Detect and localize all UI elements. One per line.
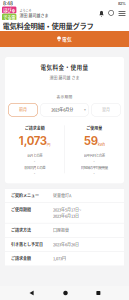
staticText: ほぴゅ — [3, 7, 15, 13]
staticText: ようこそ — [19, 8, 31, 13]
button[interactable]: 前月 — [8, 103, 37, 116]
staticText: - — [93, 159, 95, 163]
staticText: 電気料金明細・使用量グラフ — [2, 20, 93, 31]
staticText: 澤田 藤司雄さま — [19, 13, 48, 19]
staticText: kWh — [98, 142, 105, 147]
staticText: 表示期間 — [56, 94, 72, 99]
button[interactable]: Notifications — [98, 9, 105, 18]
staticText: 82% — [118, 1, 126, 6]
staticText: ▾ — [84, 108, 86, 112]
staticText: - — [93, 171, 95, 175]
staticText: 前月との差 — [27, 153, 42, 158]
staticText: ご請求金額 — [25, 125, 45, 131]
staticText: ご請求金額 — [11, 256, 31, 261]
staticText: 2023年6月分 — [51, 107, 73, 113]
staticText: - — [34, 171, 36, 175]
button[interactable]: 翌月 — [91, 103, 120, 116]
staticText: 前年同月との差 — [84, 153, 105, 158]
staticText: 電気 — [62, 35, 72, 42]
staticText: 同地域の平均使用量 — [81, 165, 108, 170]
button[interactable]: Search — [105, 9, 115, 18]
staticText: 電気料金・使用量 — [40, 63, 88, 71]
staticText: 2023年6月26日 — [53, 241, 79, 247]
staticText: 前年同月との差 — [24, 165, 45, 170]
staticText: 2023年6月13日 — [53, 213, 79, 219]
button[interactable]: Home — [63, 291, 68, 295]
staticText: 翌月 — [102, 107, 110, 113]
staticText: 59 — [84, 134, 98, 148]
button[interactable]: Menu — [115, 9, 126, 18]
staticText: 澤田 藤司雄 さま — [49, 75, 79, 81]
staticText: 従量電灯A — [53, 193, 71, 198]
staticText: 2023年5月17日~ — [53, 207, 81, 213]
staticText: ご請求方法 — [11, 227, 31, 233]
staticText: 円 — [47, 142, 51, 147]
staticText: 口座振替 — [53, 227, 69, 233]
staticText: 引き落とし予定日 — [11, 241, 43, 247]
button[interactable]: Back — [29, 290, 35, 296]
staticText: 1,073 — [19, 134, 47, 148]
staticText: - — [34, 159, 36, 163]
staticText: 1,073円 — [53, 256, 66, 261]
button[interactable]: 2023年6月分 — [40, 103, 88, 116]
staticText: ご使用量 — [86, 125, 102, 131]
staticText: 前月 — [19, 107, 27, 113]
staticText: ご使用期間 — [11, 207, 31, 213]
button[interactable]: Recents — [96, 291, 100, 295]
staticText: でる電 — [3, 14, 15, 20]
staticText: 8:48 — [3, 1, 13, 6]
staticText: ご契約メニュー — [11, 193, 39, 198]
